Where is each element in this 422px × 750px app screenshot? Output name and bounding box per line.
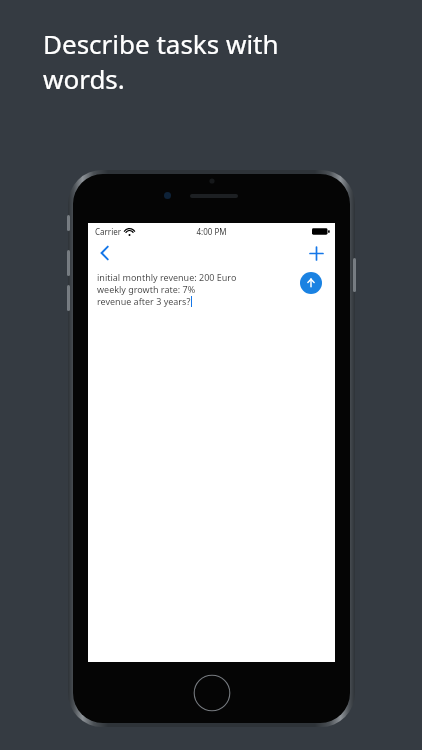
staticText: Describe tasks with (43, 26, 279, 61)
staticText: weekly growth rate: 7% (97, 283, 196, 295)
button[interactable]: Add (305, 242, 327, 264)
button[interactable]: Solve (300, 272, 322, 294)
staticText: words. (43, 61, 125, 96)
button[interactable]: Back (94, 241, 116, 265)
staticText: revenue after 3 years? (97, 295, 191, 307)
other: Home (193, 674, 231, 712)
staticText: initial monthly revenue: 200 Euro (97, 271, 237, 283)
staticText: 4:00 PM (196, 226, 227, 237)
staticText: Carrier (95, 226, 122, 237)
